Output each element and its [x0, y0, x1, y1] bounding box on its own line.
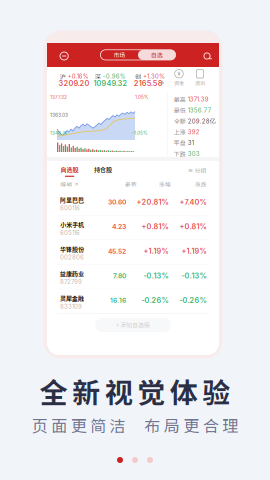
staticText: +7.40% [179, 198, 206, 206]
staticText: 创 [135, 72, 141, 81]
staticText: +1.19% [143, 247, 168, 256]
staticText: 全额 [174, 117, 186, 125]
staticText: ↗ [74, 181, 78, 187]
staticText: 1.05% [135, 94, 149, 100]
staticText: 小米手机 [60, 220, 84, 229]
staticText: 资讯 [195, 79, 205, 87]
staticText: 1363.03 [50, 112, 68, 118]
staticText: 涨幅 [159, 180, 171, 188]
staticText: 页面更简洁 布局更合理 [32, 413, 238, 437]
staticText: 全新视觉体验 [40, 371, 230, 411]
staticText: -0.13% [143, 271, 168, 280]
staticText: -0.13% [181, 271, 206, 280]
staticText: 编辑 [61, 180, 73, 188]
staticText: 阿里巴巴 [60, 195, 84, 204]
staticText: 7.80 [113, 272, 126, 280]
staticText: +20.81% [136, 198, 168, 206]
staticText: -0.26% [179, 296, 206, 305]
staticText: 3209.20 [58, 79, 89, 88]
staticText: 益康药业 [60, 269, 84, 278]
staticText: 1348.74 [50, 130, 67, 136]
staticText: 002806 [60, 254, 84, 261]
staticText: 沪 [60, 72, 66, 81]
staticText: 上涨 [174, 128, 186, 136]
staticText: 10949.32 [94, 79, 128, 88]
staticText: +1.19% [181, 247, 206, 256]
staticText: 392 [188, 128, 200, 136]
staticText: 华锋股份 [60, 245, 84, 253]
staticText: 303 [188, 150, 200, 157]
staticText: ▲ [160, 79, 164, 85]
staticText: 自选 [151, 51, 163, 59]
staticText: 自选股 [61, 165, 79, 174]
staticText: -0.96% [103, 73, 126, 80]
staticText: 45.52 [108, 247, 126, 255]
staticText: 最低 [174, 106, 186, 115]
staticText: 平盘 [174, 139, 186, 147]
staticText: 下跌 [174, 149, 186, 158]
staticText: 605116 [60, 229, 80, 236]
staticText: 31 [188, 139, 194, 147]
staticText: +1.30% [143, 73, 165, 80]
staticText: 最新 [125, 180, 137, 188]
staticText: 1377.32 [50, 94, 67, 100]
staticText: 600116 [60, 204, 80, 212]
button[interactable]: 市场 [100, 50, 138, 60]
staticText: 872799 [60, 278, 82, 286]
staticText: 灵犀金融 [60, 294, 84, 303]
staticText: 最高 [174, 95, 186, 104]
staticText: 深 [95, 72, 101, 81]
staticText: 833109 [60, 303, 82, 310]
staticText: ≡ [188, 167, 193, 174]
staticText: 4.23 [112, 223, 126, 231]
staticText: 16.16 [110, 296, 126, 304]
staticText: 1371.39 [188, 96, 209, 103]
staticText: +0.81% [179, 222, 206, 231]
staticText: +0.16% [68, 73, 89, 80]
staticText: ¥ [177, 70, 180, 77]
staticText: 209.28亿 [188, 117, 216, 125]
staticText: -1.05% [132, 130, 148, 136]
staticText: 2165.58 [134, 79, 163, 88]
staticText: 市场 [113, 51, 125, 59]
staticText: 分组 [194, 166, 206, 175]
staticText: -0.26% [141, 296, 168, 305]
staticText: 30.60 [108, 198, 126, 206]
staticText: 资金 [174, 79, 184, 87]
staticText: 涨跌 [195, 180, 207, 188]
staticText: +0.81% [141, 222, 168, 231]
staticText: 持仓股 [94, 165, 112, 174]
staticText: 1356.77 [188, 107, 211, 114]
staticText: + 添加自选股 [116, 321, 150, 329]
button[interactable]: 自选 [100, 50, 138, 60]
